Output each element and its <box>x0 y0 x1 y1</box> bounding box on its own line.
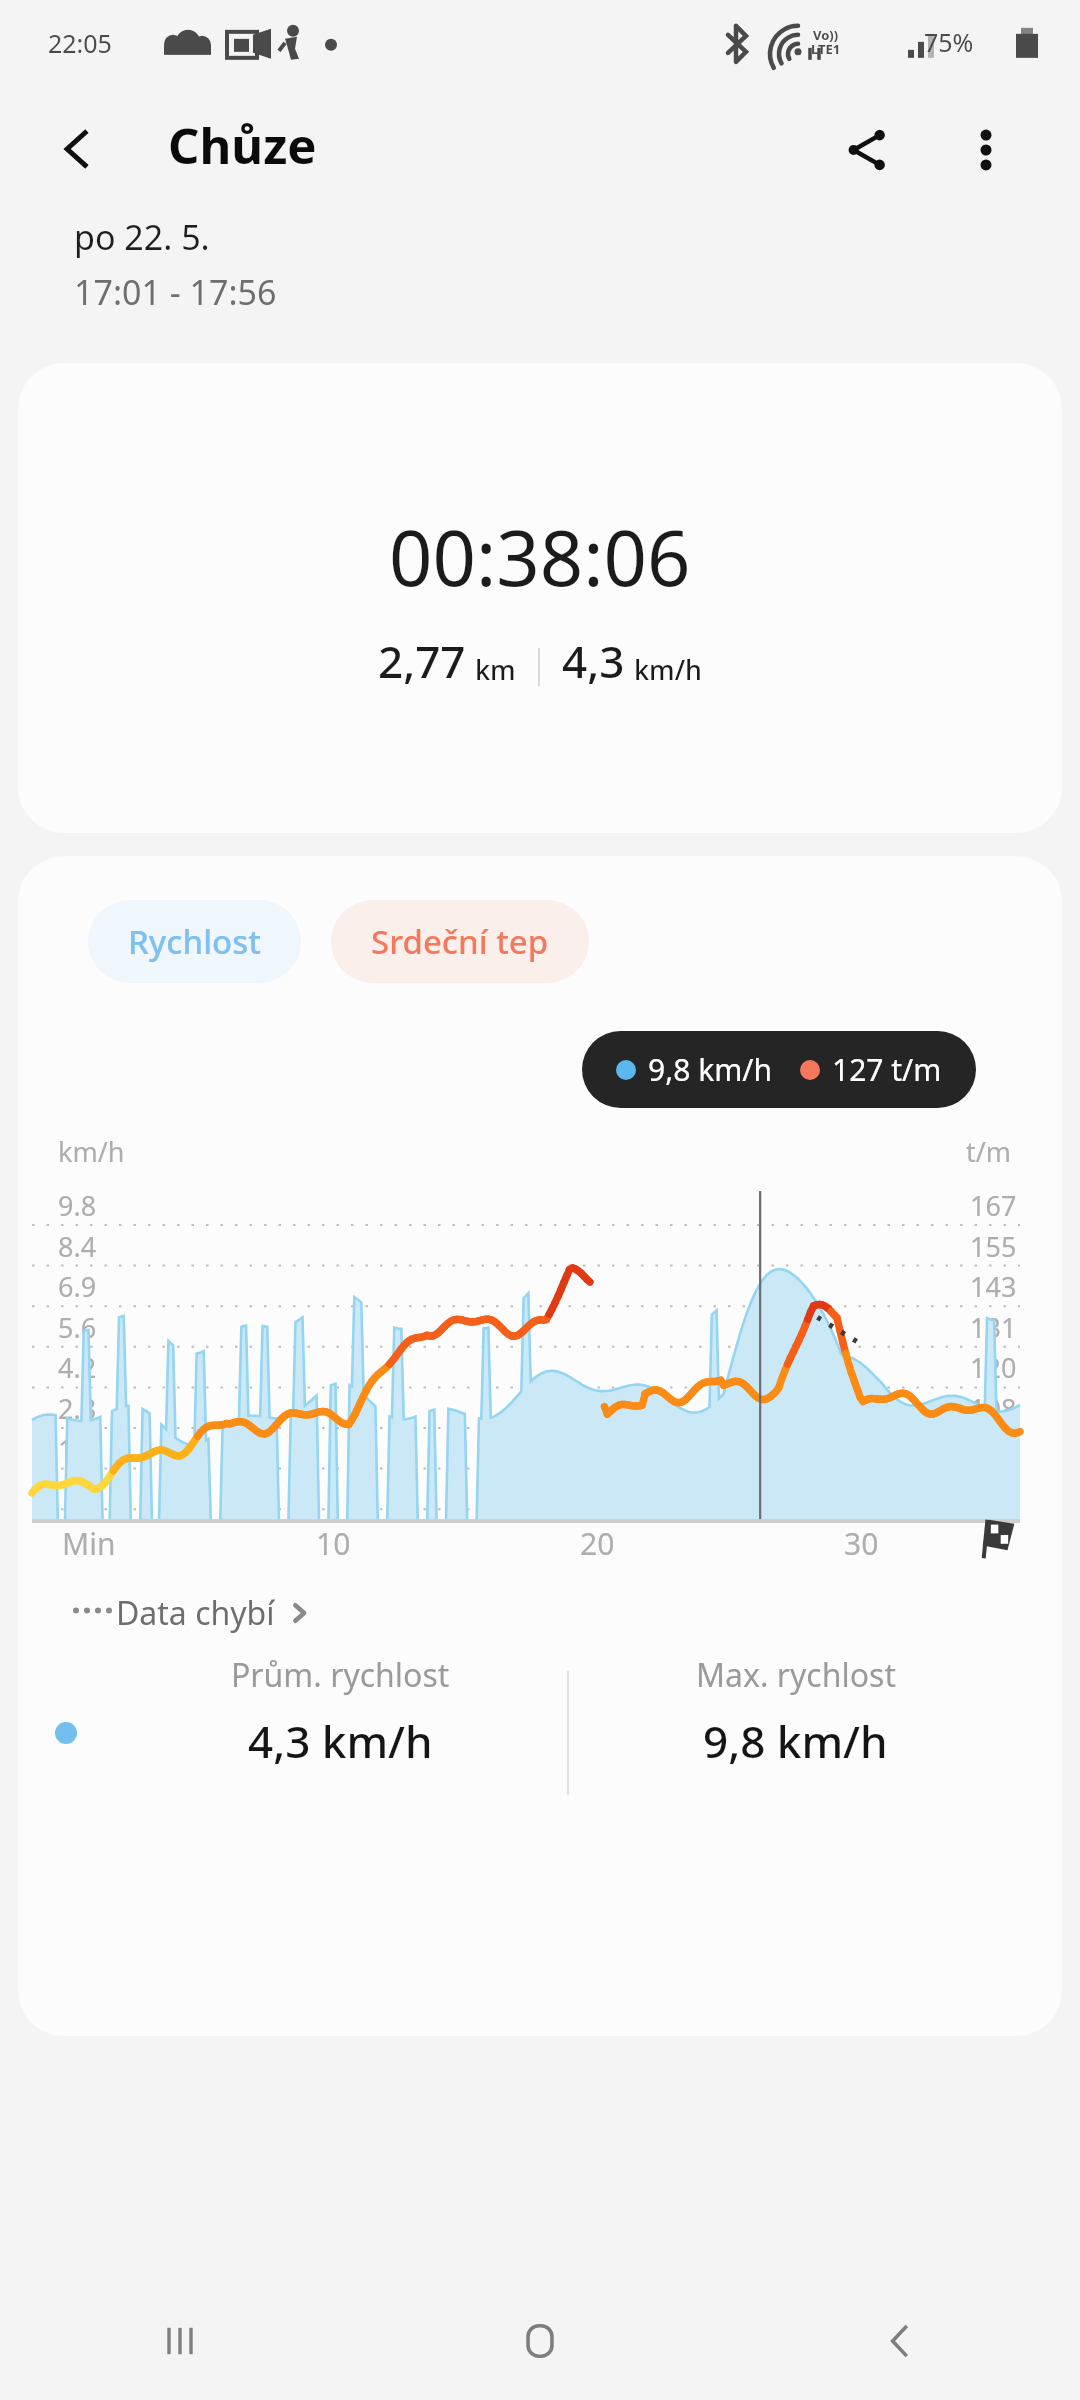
staticText: 4.2 <box>58 1349 97 1386</box>
button[interactable]: Srdeční tep <box>331 900 589 983</box>
staticText: km/h <box>58 1133 125 1170</box>
button[interactable]: Back <box>720 2282 1080 2400</box>
staticText: 5.6 <box>58 1309 97 1346</box>
staticText: 108 <box>970 1390 1017 1427</box>
staticText: Rychlost <box>128 919 261 964</box>
staticText: km/h <box>634 651 702 688</box>
staticText: 17:01 - 17:56 <box>74 269 277 315</box>
staticText: 167 <box>970 1187 1017 1224</box>
button[interactable]: Back <box>48 120 106 178</box>
staticText: 127 t/m <box>832 1049 942 1090</box>
staticText: 4,3 km/h <box>248 1711 433 1771</box>
staticText: 30 <box>844 1523 879 1564</box>
staticText: Chůze <box>168 112 317 179</box>
staticText: 10 <box>316 1523 351 1564</box>
staticText: 2,77 <box>378 631 466 691</box>
button[interactable]: Data chybí <box>72 1591 313 1635</box>
staticText: 22:05 <box>48 26 112 60</box>
button[interactable]: 00:38:06 <box>18 363 1062 833</box>
button[interactable]: 9,8 km/h <box>582 1031 976 1108</box>
button[interactable]: More options <box>955 119 1017 181</box>
staticText: 155 <box>970 1228 1017 1265</box>
staticText: Max. rychlost <box>696 1653 896 1697</box>
staticText: 9,8 km/h <box>703 1711 888 1771</box>
staticText: 75% <box>924 25 974 59</box>
staticText: 8.4 <box>58 1228 97 1265</box>
staticText: 9,8 km/h <box>648 1049 772 1090</box>
staticText: po 22. 5. <box>74 214 210 260</box>
staticText: 20 <box>580 1523 615 1564</box>
staticText: 4,3 <box>562 631 625 691</box>
staticText: Srdeční tep <box>371 919 549 964</box>
staticText: 6.9 <box>58 1268 97 1305</box>
staticText: Data chybí <box>116 1591 275 1635</box>
staticText: 2.8 <box>58 1390 97 1427</box>
staticText: t/m <box>966 1133 1012 1170</box>
button[interactable]: Home <box>360 2282 720 2400</box>
staticText: 00:38:06 <box>389 505 691 609</box>
staticText: Min <box>62 1523 116 1564</box>
staticText: 143 <box>970 1268 1017 1305</box>
staticText: 131 <box>970 1309 1017 1346</box>
staticText: 1.4 <box>58 1431 97 1468</box>
staticText: Prům. rychlost <box>231 1653 450 1697</box>
staticText: 120 <box>970 1349 1017 1386</box>
staticText: km <box>475 651 516 688</box>
button[interactable]: Share <box>835 119 897 181</box>
button[interactable]: Recent apps <box>0 2282 360 2400</box>
staticText: 9.8 <box>58 1187 97 1224</box>
button[interactable]: Rychlost <box>88 900 301 983</box>
staticText: LTE1 <box>811 40 841 58</box>
staticText: Vo)) <box>813 26 839 44</box>
